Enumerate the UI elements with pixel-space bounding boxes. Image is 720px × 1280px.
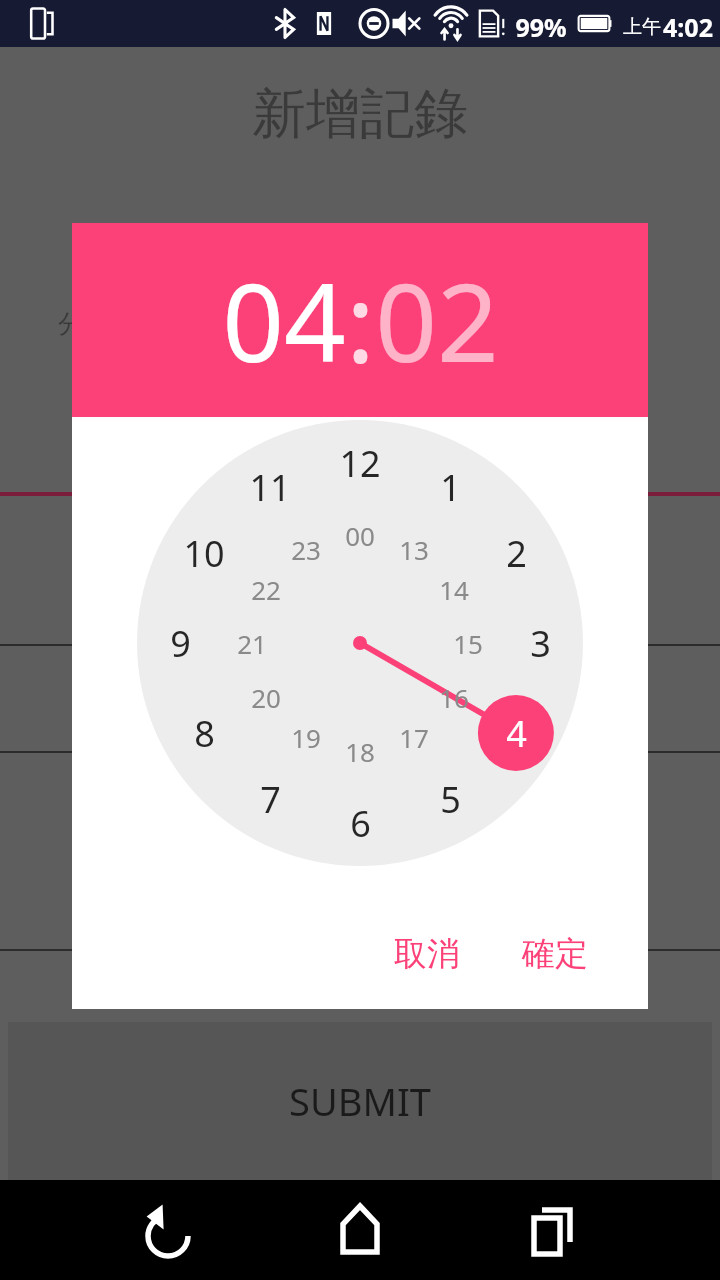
staticText: 取消 [394, 933, 460, 975]
staticText: 23 [291, 532, 321, 567]
staticText: 3 [530, 619, 551, 668]
staticText: 15 [453, 626, 483, 661]
staticText: 7 [260, 775, 281, 824]
staticText: 02 [375, 247, 499, 394]
staticText: : [346, 247, 375, 394]
staticText: SUBMIT [289, 1075, 431, 1127]
staticText: 確定 [522, 933, 588, 975]
staticText: 11 [249, 463, 291, 512]
staticText: 4:02 [663, 10, 713, 44]
staticText: 上午 [623, 15, 661, 39]
button[interactable]: Recent apps [492, 1180, 612, 1280]
staticText: 22 [251, 572, 281, 607]
staticText: 16 [439, 680, 469, 715]
staticText: 1 [440, 463, 461, 512]
button[interactable]: SUBMIT [8, 1022, 712, 1180]
button[interactable]: Home [300, 1180, 420, 1280]
staticText: 00 [345, 518, 375, 553]
staticText: 9 [170, 619, 191, 668]
button[interactable]: 04 [72, 223, 648, 417]
staticText: 2 [506, 529, 527, 578]
button[interactable]: 確定 [500, 901, 610, 1006]
staticText: 12 [339, 439, 381, 488]
staticText: 19 [291, 720, 321, 755]
staticText: 8 [194, 709, 215, 758]
staticText: 6 [350, 799, 371, 848]
staticText: 20 [251, 680, 281, 715]
button[interactable]: 取消 [372, 901, 482, 1006]
staticText: 04 [222, 247, 346, 394]
staticText: 13 [399, 532, 429, 567]
staticText: 18 [345, 734, 375, 769]
staticText: 14 [439, 572, 469, 607]
staticText: 21 [237, 626, 267, 661]
staticText: 5 [440, 775, 461, 824]
staticText: 新增記錄 [252, 80, 468, 148]
button[interactable]: Back [108, 1180, 228, 1280]
staticText: 17 [399, 720, 429, 755]
staticText: 99% [515, 10, 567, 44]
staticText: 分 [58, 308, 84, 341]
staticText: 4 [506, 709, 527, 758]
staticText: 10 [183, 529, 225, 578]
